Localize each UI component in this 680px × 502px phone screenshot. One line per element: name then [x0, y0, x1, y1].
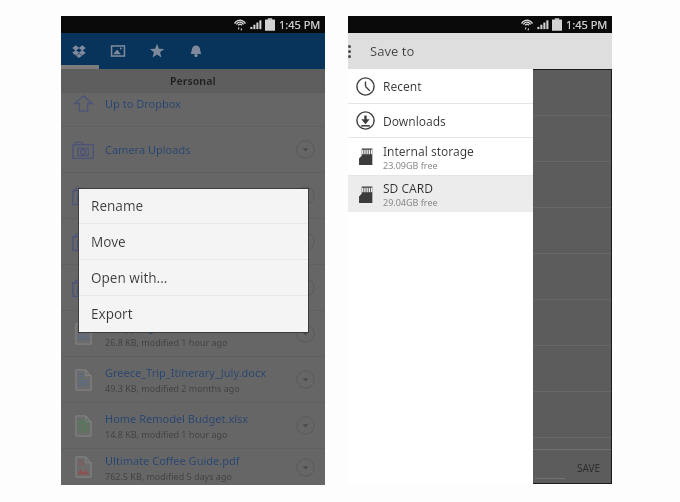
- button[interactable]: More options: [296, 186, 315, 205]
- staticText: 762.5 KB, modified 5 days ago: [105, 470, 232, 482]
- staticText: SD CARD: [383, 180, 433, 196]
- staticText: Internal storage: [383, 143, 474, 159]
- button[interactable]: Files: [59, 33, 98, 69]
- button[interactable]: More options: [296, 232, 315, 251]
- staticText: Up to Dropbox: [105, 96, 181, 111]
- button[interactable]: Photos: [98, 33, 137, 69]
- button[interactable]: More options: [296, 140, 315, 159]
- button[interactable]: SD CARD: [348, 176, 533, 212]
- staticText: 26.8 KB, modified 1 hour ago: [105, 336, 228, 348]
- button[interactable]: Internal storage: [348, 138, 533, 175]
- button[interactable]: More options: [296, 370, 315, 389]
- staticText: Downloads: [383, 113, 446, 129]
- staticText: Open with...: [91, 269, 168, 287]
- button[interactable]: Recent: [348, 69, 533, 103]
- staticText: Personal: [170, 74, 216, 88]
- staticText: Move: [91, 233, 126, 251]
- button[interactable]: Up to Dropbox: [61, 93, 325, 126]
- staticText: 23.09GB free: [383, 159, 438, 171]
- staticText: Greece_Trip_Itinerary_July.docx: [105, 365, 267, 380]
- staticText: Shopping_List.txt: [105, 319, 194, 334]
- button[interactable]: More options: [296, 458, 315, 477]
- staticText: 29.04GB free: [383, 196, 438, 208]
- button[interactable]: Export: [79, 296, 308, 332]
- button[interactable]: More options: [348, 33, 354, 69]
- staticText: Recent: [383, 78, 422, 94]
- button[interactable]: Open with...: [79, 260, 308, 295]
- staticText: Save to: [370, 42, 415, 60]
- staticText: 49.3 KB, modified 2 months ago: [105, 382, 240, 394]
- staticText: SAVE: [577, 461, 601, 475]
- button[interactable]: More options: [296, 324, 315, 343]
- button[interactable]: Ultimate Coffee Guide.pdf: [61, 449, 325, 485]
- button[interactable]: Public: [61, 219, 325, 264]
- button[interactable]: Shopping_List.txt: [61, 311, 325, 356]
- staticText: Public: [105, 234, 137, 249]
- button[interactable]: Downloads: [348, 104, 533, 137]
- button[interactable]: Home Remodel Budget.xlsx: [61, 403, 325, 448]
- button[interactable]: Camera Uploads: [61, 127, 325, 172]
- button[interactable]: Greece_Trip_Itinerary_July.docx: [61, 357, 325, 402]
- staticText: Work Projects: [105, 280, 177, 295]
- button[interactable]: More options: [296, 278, 315, 297]
- staticText: Export: [91, 305, 133, 323]
- staticText: 1:45 PM: [566, 17, 608, 32]
- staticText: Family Photos: [105, 188, 178, 203]
- staticText: Ultimate Coffee Guide.pdf: [105, 453, 240, 468]
- button[interactable]: More options: [296, 416, 315, 435]
- button[interactable]: Family Photos: [61, 173, 325, 218]
- button[interactable]: Rename: [79, 189, 308, 223]
- staticText: Home Remodel Budget.xlsx: [105, 411, 249, 426]
- button[interactable]: Notifications: [176, 33, 215, 69]
- button[interactable]: Work Projects: [61, 265, 325, 310]
- staticText: 14.8 KB, modified 1 hour ago: [105, 428, 228, 440]
- staticText: Camera Uploads: [105, 142, 191, 157]
- staticText: 1:45 PM: [279, 17, 321, 32]
- button[interactable]: Move: [79, 224, 308, 259]
- button[interactable]: Favorites: [137, 33, 176, 69]
- staticText: Rename: [91, 197, 144, 215]
